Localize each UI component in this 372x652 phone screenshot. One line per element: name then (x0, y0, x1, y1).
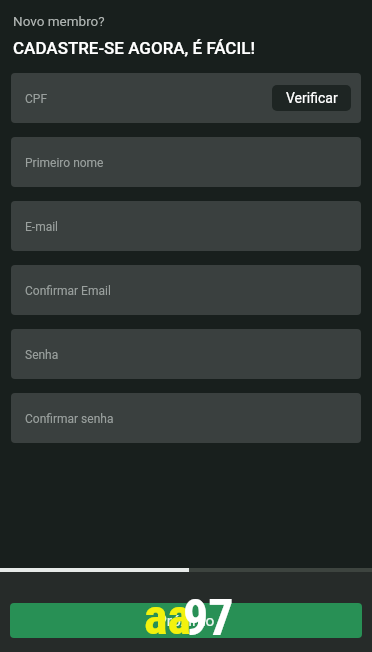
staticText: E-mail (25, 220, 59, 234)
staticText: CPF (25, 92, 48, 106)
staticText: Primeiro nome (25, 156, 104, 170)
staticText: Senha (25, 348, 59, 362)
button[interactable]: Próximo (10, 603, 362, 638)
staticText: Confirmar senha (25, 412, 114, 426)
other: Progresso do cadastro (0, 568, 372, 572)
staticText: CADASTRE-SE AGORA, É FÁCIL! (13, 38, 255, 58)
staticText: Novo membro? (13, 13, 105, 29)
staticText: Verificar (286, 90, 338, 106)
staticText: aa (144, 588, 192, 647)
staticText: Próximo (157, 612, 215, 630)
button[interactable]: Confirmar senha (11, 393, 361, 443)
button[interactable]: CPF (11, 73, 361, 123)
staticText: Confirmar Email (25, 284, 111, 298)
button[interactable]: Confirmar Email (11, 265, 361, 315)
button[interactable]: E-mail (11, 201, 361, 251)
button[interactable]: Verificar (272, 85, 351, 111)
button[interactable]: Senha (11, 329, 361, 379)
button[interactable]: Primeiro nome (11, 137, 361, 187)
staticText: 97 (183, 589, 234, 648)
